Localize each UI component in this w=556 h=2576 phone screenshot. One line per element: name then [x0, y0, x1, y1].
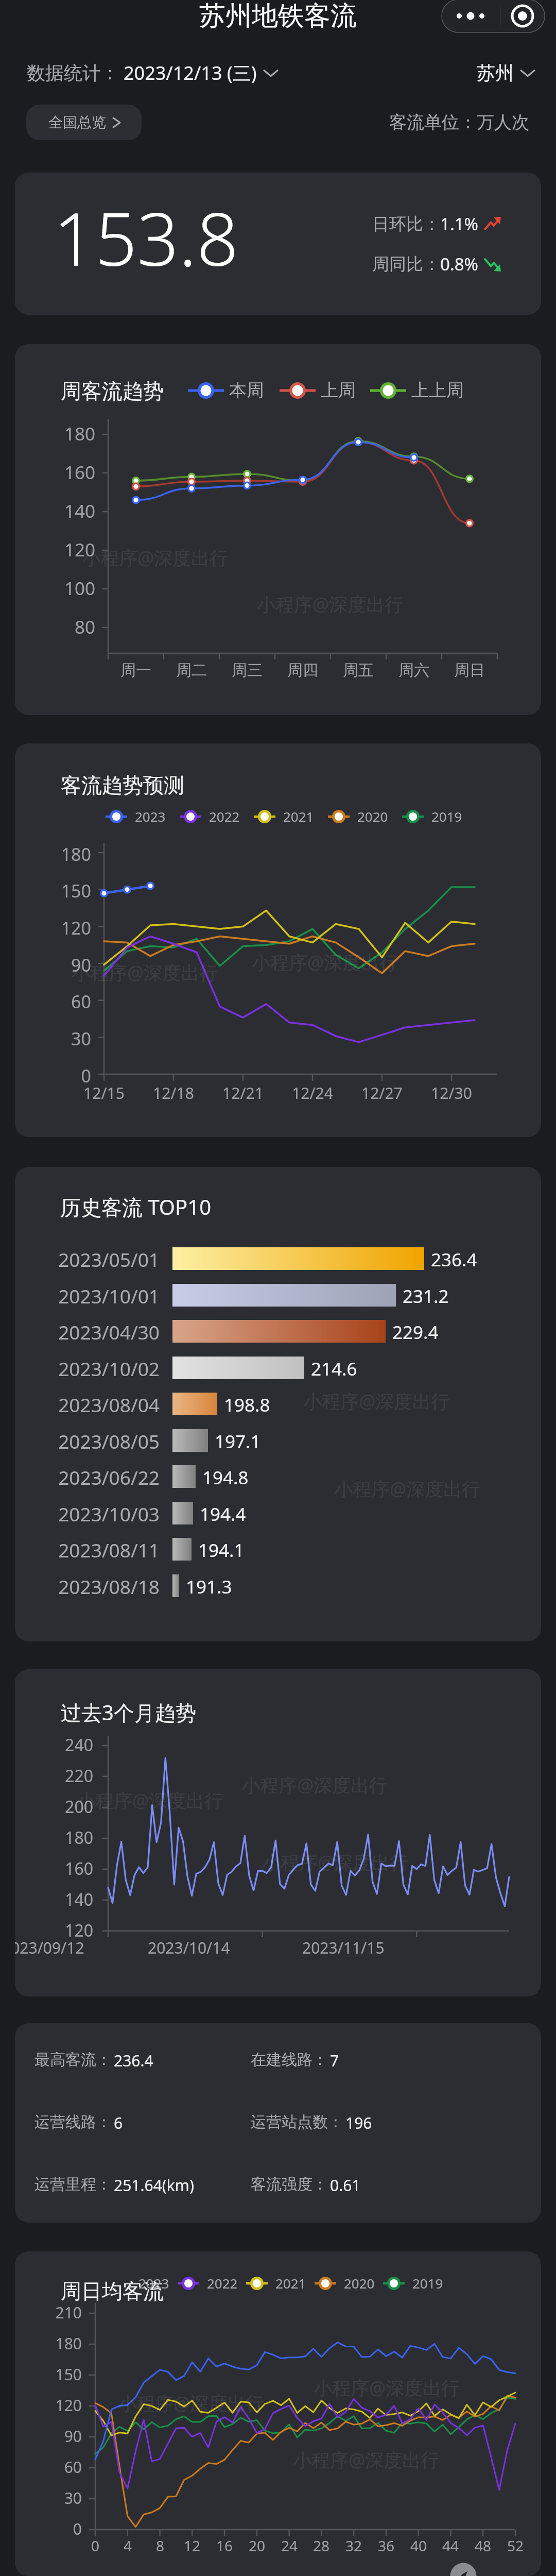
staticText: 客流单位：万人次 — [389, 111, 529, 133]
staticText: 231.2 — [403, 1284, 449, 1309]
staticText: 0.8% — [440, 252, 479, 276]
staticText: 236.4 — [431, 1247, 477, 1272]
staticText: 153.8 — [54, 188, 238, 287]
staticText: 160 — [15, 1857, 93, 1880]
staticText: 小程序@深度出行 — [257, 591, 404, 617]
staticText: 在建线路： — [251, 2050, 328, 2070]
staticText: 2019 — [412, 2274, 443, 2292]
staticText: 251.64(km) — [114, 2175, 194, 2196]
button[interactable]: More options — [442, 0, 545, 32]
button[interactable]: 苏州 — [477, 61, 535, 84]
staticText: 150 — [15, 2364, 82, 2385]
staticText: 120 — [15, 916, 91, 940]
staticText: 7 — [330, 2050, 339, 2071]
staticText: 120 — [15, 1919, 93, 1942]
staticText: 220 — [15, 1765, 93, 1787]
staticText: 44 — [404, 2536, 497, 2555]
staticText: 30 — [15, 1027, 91, 1050]
staticText: 2021 — [275, 2274, 306, 2292]
staticText: 240 — [15, 1734, 93, 1756]
staticText: 140 — [15, 1888, 93, 1911]
staticText: 214.6 — [311, 1357, 357, 1381]
staticText: 小程序@深度出行 — [72, 960, 218, 985]
staticText: 200 — [15, 1795, 93, 1818]
staticText: 8 — [114, 2536, 206, 2555]
staticText: 2023/10/01 — [15, 1283, 160, 1309]
staticText: 运营里程： — [34, 2175, 112, 2194]
staticText: 过去3个月趋势 — [61, 1698, 196, 1726]
staticText: 30 — [15, 2487, 82, 2509]
button[interactable]: 数据统计： — [27, 60, 279, 86]
staticText: 28 — [275, 2536, 368, 2555]
staticText: 周六 — [368, 660, 460, 680]
button[interactable]: 全国总览 — [26, 105, 142, 140]
staticText: 12/30 — [405, 1082, 498, 1104]
staticText: 2023/10/14 — [148, 1937, 230, 1958]
staticText: 180 — [15, 421, 95, 446]
staticText: 苏州地铁客流 — [199, 0, 357, 32]
staticText: 150 — [15, 879, 91, 903]
staticText: 194.1 — [198, 1538, 245, 1563]
staticText: 2022 — [209, 807, 240, 825]
staticText: 120 — [15, 537, 95, 562]
staticText: 60 — [15, 990, 91, 1013]
staticText: 小程序@深度出行 — [334, 1476, 481, 1501]
staticText: 小程序@深度出行 — [314, 2375, 460, 2400]
staticText: 36 — [340, 2536, 432, 2555]
staticText: 198.8 — [224, 1393, 270, 1417]
staticText: 2020 — [344, 2274, 375, 2292]
staticText: 小程序@深度出行 — [82, 545, 229, 570]
staticText: 210 — [15, 2302, 82, 2323]
staticText: 0 — [49, 2536, 142, 2555]
staticText: 48 — [437, 2536, 529, 2555]
staticText: 周客流趋势 — [61, 378, 164, 404]
staticText: 180 — [15, 1826, 93, 1849]
staticText: 0 — [15, 1064, 91, 1088]
staticText: 12/21 — [197, 1082, 289, 1104]
staticText: 本周 — [229, 379, 264, 401]
staticText: 周一 — [90, 660, 182, 680]
staticText: 2023/09/12 — [15, 1937, 84, 1958]
staticText: 周同比： — [372, 253, 440, 275]
staticText: 小程序@深度出行 — [293, 2447, 440, 2472]
staticText: 周四 — [256, 660, 349, 680]
staticText: 16 — [178, 2536, 271, 2555]
staticText: 小程序@深度出行 — [77, 1788, 223, 1813]
staticText: 1.1% — [440, 212, 479, 235]
staticText: 194.4 — [200, 1502, 246, 1527]
staticText: 苏州 — [477, 61, 514, 84]
staticText: 2023/08/11 — [15, 1537, 160, 1563]
staticText: 运营线路： — [34, 2112, 112, 2132]
staticText: 2022 — [207, 2274, 238, 2292]
staticText: 运营站点数： — [251, 2112, 343, 2132]
staticText: 2023/11/15 — [302, 1937, 385, 1958]
staticText: 229.4 — [392, 1320, 439, 1345]
staticText: 2023/04/30 — [15, 1319, 160, 1345]
staticText: 160 — [15, 460, 95, 485]
staticText: 上上周 — [411, 379, 464, 401]
staticText: 12 — [146, 2536, 238, 2555]
staticText: 2023/10/03 — [15, 1501, 160, 1527]
staticText: 180 — [15, 842, 91, 866]
staticText: 数据统计： — [27, 61, 119, 84]
staticText: 2023/08/04 — [15, 1392, 160, 1417]
staticText: 40 — [372, 2536, 465, 2555]
staticText: 12/24 — [266, 1082, 359, 1104]
staticText: 120 — [15, 2395, 82, 2416]
staticText: 52 — [469, 2536, 541, 2555]
staticText: 全国总览 — [48, 113, 106, 131]
staticText: 2023/06/22 — [15, 1464, 160, 1490]
staticText: 236.4 — [114, 2050, 153, 2071]
staticText: 180 — [15, 2333, 82, 2354]
staticText: 日环比： — [372, 213, 440, 235]
staticText: 周三 — [201, 660, 293, 680]
staticText: 周五 — [312, 660, 405, 680]
staticText: 60 — [15, 2456, 82, 2478]
staticText: 24 — [243, 2536, 336, 2555]
staticText: 小程序@深度出行 — [303, 1388, 450, 1414]
staticText: 12/15 — [58, 1082, 150, 1104]
staticText: 2023 — [135, 807, 166, 825]
staticText: 100 — [15, 576, 95, 601]
staticText: 客流趋势预测 — [61, 772, 184, 798]
staticText: 小程序@深度出行 — [118, 2391, 265, 2416]
